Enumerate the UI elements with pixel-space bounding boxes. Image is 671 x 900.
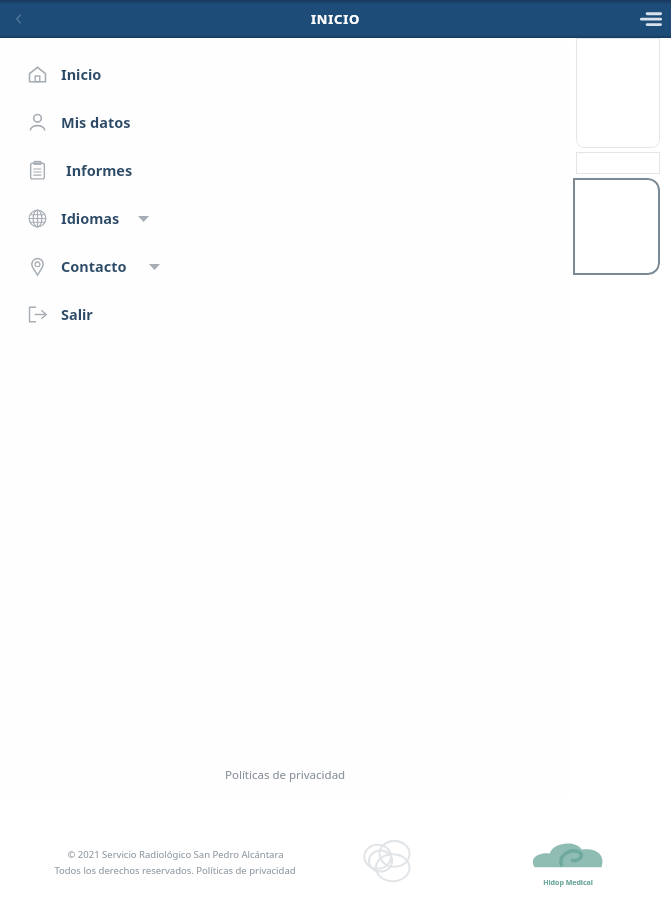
staticText: Informes (66, 160, 133, 180)
staticText: INICIO (311, 10, 361, 28)
staticText: Salir (61, 304, 93, 324)
button[interactable]: Menú (631, 0, 671, 38)
button[interactable]: Contacto (0, 242, 571, 290)
button[interactable]: Salir (0, 290, 571, 338)
staticText: Idiomas (61, 208, 120, 228)
button[interactable]: Inicio (0, 50, 571, 98)
button[interactable]: Informes (0, 146, 571, 194)
staticText: © 2021 Servicio Radiológico San Pedro Al… (67, 848, 284, 861)
staticText: Todos los derechos reservados. Políticas… (54, 864, 296, 877)
button[interactable]: Políticas de privacidad (215, 763, 356, 787)
button[interactable]: Atrás (0, 0, 38, 38)
button[interactable]: Idiomas (0, 194, 571, 242)
staticText: Inicio (61, 64, 102, 84)
staticText: Políticas de privacidad (225, 767, 346, 783)
staticText: Mis datos (61, 112, 131, 132)
staticText: Hidop Medical (543, 878, 593, 888)
button[interactable]: Mis datos (0, 98, 571, 146)
staticText: Contacto (61, 256, 127, 276)
